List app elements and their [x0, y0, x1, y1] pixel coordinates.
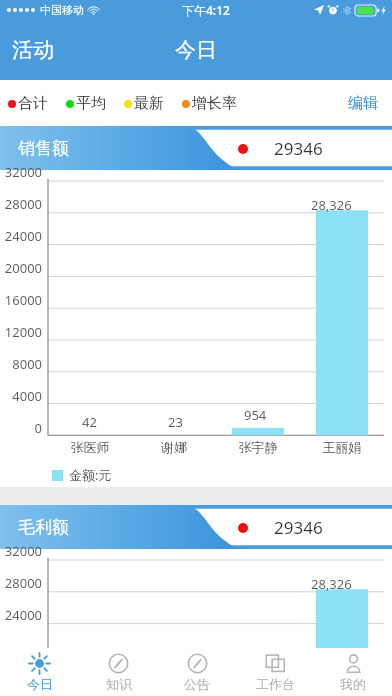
staticText: 28000 [0, 574, 42, 592]
staticText: 合计 [18, 94, 48, 113]
button[interactable]: 毛利额 [0, 505, 392, 549]
staticText: 增长率 [192, 94, 237, 113]
staticText: 工作台 [256, 676, 295, 692]
staticText: 王丽娟 [300, 439, 384, 455]
button[interactable]: 公告 [158, 648, 236, 696]
staticText: 中国移动 [40, 3, 84, 17]
staticText: 28,326 [311, 575, 352, 593]
staticText: 29346 [274, 516, 323, 539]
button[interactable]: 销售额 [0, 126, 392, 170]
staticText: 平均 [76, 94, 106, 113]
staticText: 20000 [0, 259, 42, 277]
staticText: 29346 [274, 137, 323, 160]
staticText: 我的 [340, 676, 366, 692]
staticText: 42 [82, 413, 97, 431]
staticText: 32000 [0, 542, 42, 560]
staticText: 12000 [0, 323, 42, 341]
button[interactable]: 知识 [79, 648, 158, 696]
staticText: 金额:元 [69, 466, 112, 484]
button[interactable]: 工作台 [236, 648, 314, 696]
staticText: 下午4:12 [182, 2, 230, 18]
button[interactable]: 合计 [8, 94, 48, 113]
staticText: 0 [0, 419, 42, 437]
button[interactable]: 平均 [66, 94, 106, 113]
staticText: 954 [244, 406, 267, 424]
staticText: 24000 [0, 227, 42, 245]
staticText: 公告 [184, 676, 210, 692]
staticText: 4000 [0, 387, 42, 405]
staticText: 今日 [27, 676, 53, 692]
staticText: 8000 [0, 355, 42, 373]
button[interactable]: 今日 [0, 648, 79, 696]
staticText: 32000 [0, 163, 42, 181]
staticText: 28000 [0, 195, 42, 213]
staticText: 编辑 [348, 94, 378, 113]
staticText: 24000 [0, 606, 42, 624]
staticText: 张医师 [48, 439, 132, 455]
staticText: 活动 [12, 37, 54, 63]
staticText: 毛利额 [18, 517, 69, 538]
staticText: 今日 [175, 37, 217, 63]
button[interactable]: 编辑 [344, 88, 382, 119]
button[interactable]: 我的 [314, 648, 392, 696]
staticText: 28,326 [311, 196, 352, 214]
staticText: 知识 [106, 676, 132, 692]
button[interactable]: 活动 [0, 31, 66, 69]
button[interactable]: 最新 [124, 94, 164, 113]
staticText: 谢娜 [132, 439, 216, 455]
staticText: 最新 [134, 94, 164, 113]
staticText: 张宇静 [216, 439, 300, 455]
staticText: 销售额 [18, 138, 69, 159]
staticText: 23 [168, 413, 183, 431]
staticText: 16000 [0, 291, 42, 309]
button[interactable]: 增长率 [182, 94, 237, 113]
